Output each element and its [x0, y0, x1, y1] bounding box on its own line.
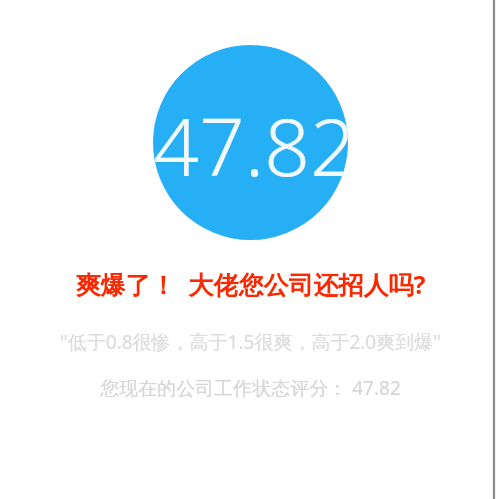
button[interactable]: 工作状态评分 47.82 [153, 45, 348, 240]
staticText: "低于0.8很惨，高于1.5很爽，高于2.0爽到爆" [12, 329, 489, 355]
staticText: 您现在的公司工作状态评分： 47.82 [12, 375, 489, 401]
staticText: 爽爆了！ 大佬您公司还招人吗? [16, 267, 485, 301]
staticText: 47.82 [153, 90, 348, 199]
